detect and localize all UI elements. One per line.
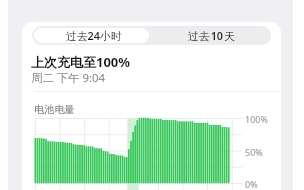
staticText: 50% — [245, 146, 263, 158]
staticText: 电池电量 — [34, 103, 75, 116]
staticText: 100% — [245, 113, 268, 125]
staticText: 周二 下午 9:04 — [31, 70, 106, 86]
button[interactable]: 过去 10 天 — [155, 28, 268, 43]
button[interactable]: 过去24小时 — [34, 28, 149, 43]
staticText: 上次充电至100% — [31, 53, 131, 71]
staticText: 过去 10 天 — [188, 28, 235, 43]
staticText: 0% — [245, 178, 258, 190]
staticText: 过去24小时 — [66, 28, 122, 43]
